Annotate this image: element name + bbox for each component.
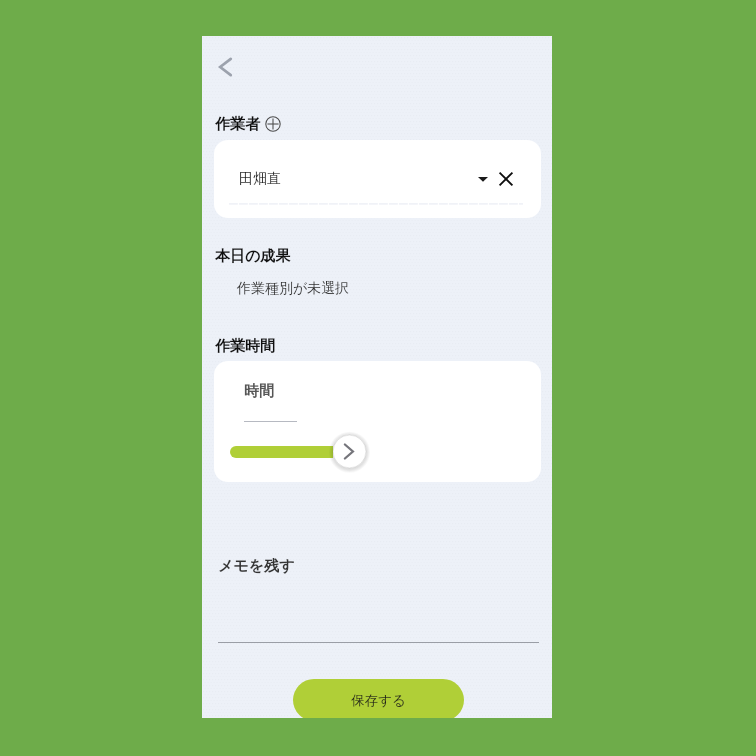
staticText: 作業種別が未選択	[237, 280, 350, 298]
staticText: 保存する	[351, 692, 406, 709]
staticText: メモを残す	[218, 557, 295, 576]
staticText: 田畑直	[239, 170, 281, 188]
button[interactable]: 田畑直	[214, 140, 541, 218]
staticText: 作業時間	[215, 337, 275, 356]
button[interactable]: Adjust hours	[329, 431, 370, 472]
button[interactable]: Back	[203, 45, 247, 89]
button[interactable]: Select worker	[472, 168, 494, 190]
button[interactable]: 保存する	[293, 679, 464, 718]
button[interactable]: Add worker	[264, 115, 282, 133]
staticText: 本日の成果	[215, 247, 291, 266]
staticText: 時間	[244, 382, 274, 401]
button[interactable]: Clear	[493, 166, 519, 192]
staticText: 作業者	[215, 115, 260, 134]
